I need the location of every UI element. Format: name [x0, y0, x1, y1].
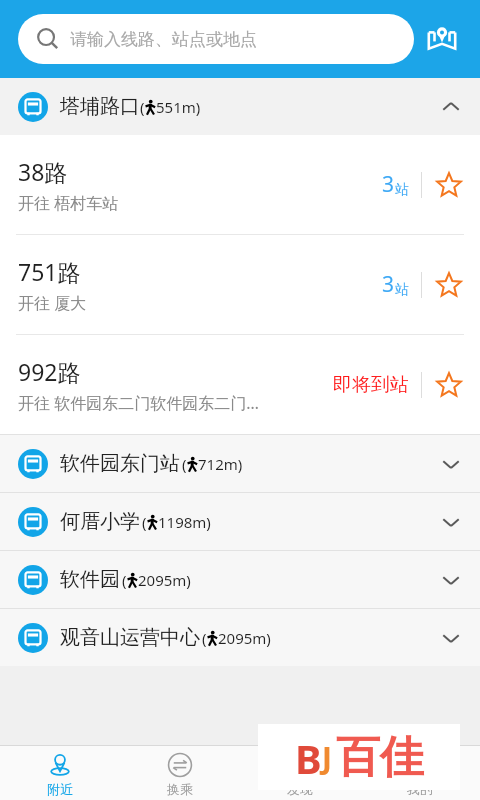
- staticText: 塔埔路口: [60, 94, 140, 119]
- staticText: 换乘: [167, 781, 193, 797]
- button[interactable]: 751路: [0, 235, 480, 334]
- staticText: 38路: [18, 156, 68, 187]
- staticText: 软件园东门站: [60, 451, 180, 476]
- other: Expand: [440, 511, 462, 533]
- other: Collapse: [440, 96, 462, 118]
- staticText: 请输入线路、站点或地点: [70, 29, 257, 50]
- staticText: (: [142, 512, 147, 532]
- staticText: 附近: [47, 781, 73, 797]
- staticText: 1198m): [158, 512, 211, 532]
- staticText: 3: [382, 270, 395, 299]
- staticText: 开往 梧村车站: [18, 192, 119, 214]
- staticText: 551m): [156, 97, 201, 117]
- staticText: 站: [395, 281, 409, 299]
- staticText: (: [140, 97, 145, 117]
- button[interactable]: 观音山运营中心: [0, 609, 480, 666]
- staticText: 开往 厦大: [18, 292, 87, 314]
- button[interactable]: 发现: [240, 746, 360, 800]
- staticText: 2095m): [218, 628, 271, 648]
- staticText: (: [122, 570, 127, 590]
- button[interactable]: 何厝小学: [0, 493, 480, 550]
- staticText: B: [295, 731, 322, 785]
- button[interactable]: 992路: [0, 335, 480, 434]
- staticText: J: [322, 737, 332, 778]
- staticText: (: [182, 454, 187, 474]
- button[interactable]: Map: [414, 11, 470, 67]
- staticText: 我的: [407, 781, 433, 797]
- staticText: 何厝小学: [60, 509, 140, 534]
- other: Expand: [440, 569, 462, 591]
- button[interactable]: Favorite: [434, 170, 464, 200]
- staticText: 软件园: [60, 567, 120, 592]
- button[interactable]: 软件园东门站: [0, 435, 480, 492]
- button[interactable]: 塔埔路口: [0, 78, 480, 135]
- staticText: 站: [395, 181, 409, 199]
- staticText: 即将到站: [333, 373, 409, 397]
- button[interactable]: 软件园: [0, 551, 480, 608]
- staticText: 发现: [287, 781, 313, 797]
- staticText: 712m): [198, 454, 243, 474]
- staticText: 992路: [18, 356, 81, 387]
- other: Expand: [440, 453, 462, 475]
- button[interactable]: 我的: [360, 746, 480, 800]
- staticText: 百佳: [336, 730, 424, 785]
- staticText: 751路: [18, 256, 81, 287]
- button[interactable]: 请输入线路、站点或地点: [18, 14, 414, 64]
- button[interactable]: Favorite: [434, 370, 464, 400]
- other: Expand: [440, 627, 462, 649]
- staticText: (: [202, 628, 207, 648]
- staticText: 观音山运营中心: [60, 625, 200, 650]
- staticText: 3: [382, 170, 395, 199]
- button[interactable]: 38路: [0, 135, 480, 234]
- staticText: 开往 软件园东二门软件园东二门…: [18, 392, 259, 414]
- button[interactable]: Favorite: [434, 270, 464, 300]
- staticText: 2095m): [138, 570, 191, 590]
- button[interactable]: 附近: [0, 746, 120, 800]
- button[interactable]: 换乘: [120, 746, 240, 800]
